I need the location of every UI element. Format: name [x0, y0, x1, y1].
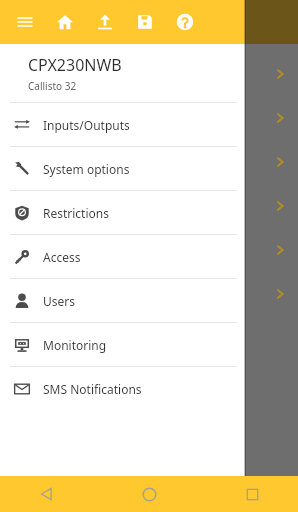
- button[interactable]: Restrictions: [0, 191, 245, 234]
- staticText: Users: [43, 293, 75, 309]
- staticText: Inputs/Outputs: [43, 117, 130, 133]
- button[interactable]: Monitoring: [0, 323, 245, 366]
- button[interactable]: Inputs/Outputs: [0, 103, 245, 146]
- button[interactable]: Save: [125, 0, 165, 44]
- staticText: System options: [43, 161, 130, 177]
- button[interactable]: Home: [45, 0, 85, 44]
- staticText: SMS Notifications: [43, 381, 142, 397]
- button[interactable]: Upload: [85, 0, 125, 44]
- button[interactable]: Home: [133, 478, 165, 510]
- button[interactable]: SMS Notifications: [0, 367, 245, 410]
- button[interactable]: Menu: [5, 0, 45, 44]
- staticText: CPX230NWB: [28, 54, 122, 76]
- button[interactable]: Access: [0, 235, 245, 278]
- button[interactable]: Users: [0, 279, 245, 322]
- button[interactable]: Help: [165, 0, 205, 44]
- button[interactable]: CPX230NWB: [0, 44, 245, 102]
- staticText: Access: [43, 249, 81, 265]
- button[interactable]: Recents: [236, 478, 268, 510]
- staticText: Monitoring: [43, 337, 107, 353]
- staticText: Restrictions: [43, 205, 109, 221]
- button[interactable]: System options: [0, 147, 245, 190]
- staticText: Callisto 32: [28, 79, 77, 93]
- button[interactable]: Back: [30, 478, 62, 510]
